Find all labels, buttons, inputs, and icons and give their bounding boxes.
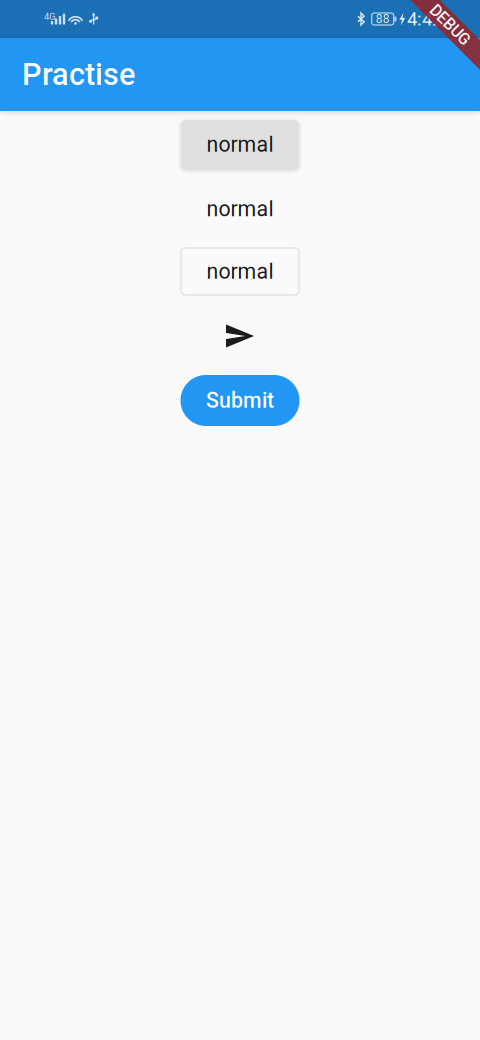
button[interactable]: normal (181, 248, 299, 295)
button[interactable]: Send (216, 312, 264, 360)
staticText: normal (206, 196, 273, 221)
staticText: Practise (22, 56, 135, 92)
staticText: 88 (376, 12, 390, 26)
staticText: Submit (206, 388, 274, 413)
staticText: 4:42 (407, 8, 442, 30)
staticText: 4G (44, 11, 55, 22)
staticText: normal (206, 132, 273, 157)
button[interactable]: normal (181, 120, 298, 169)
staticText: normal (206, 259, 273, 284)
button[interactable]: normal (182, 185, 298, 233)
staticText: DEBUG (425, 16, 475, 34)
button[interactable]: Submit (180, 375, 299, 426)
